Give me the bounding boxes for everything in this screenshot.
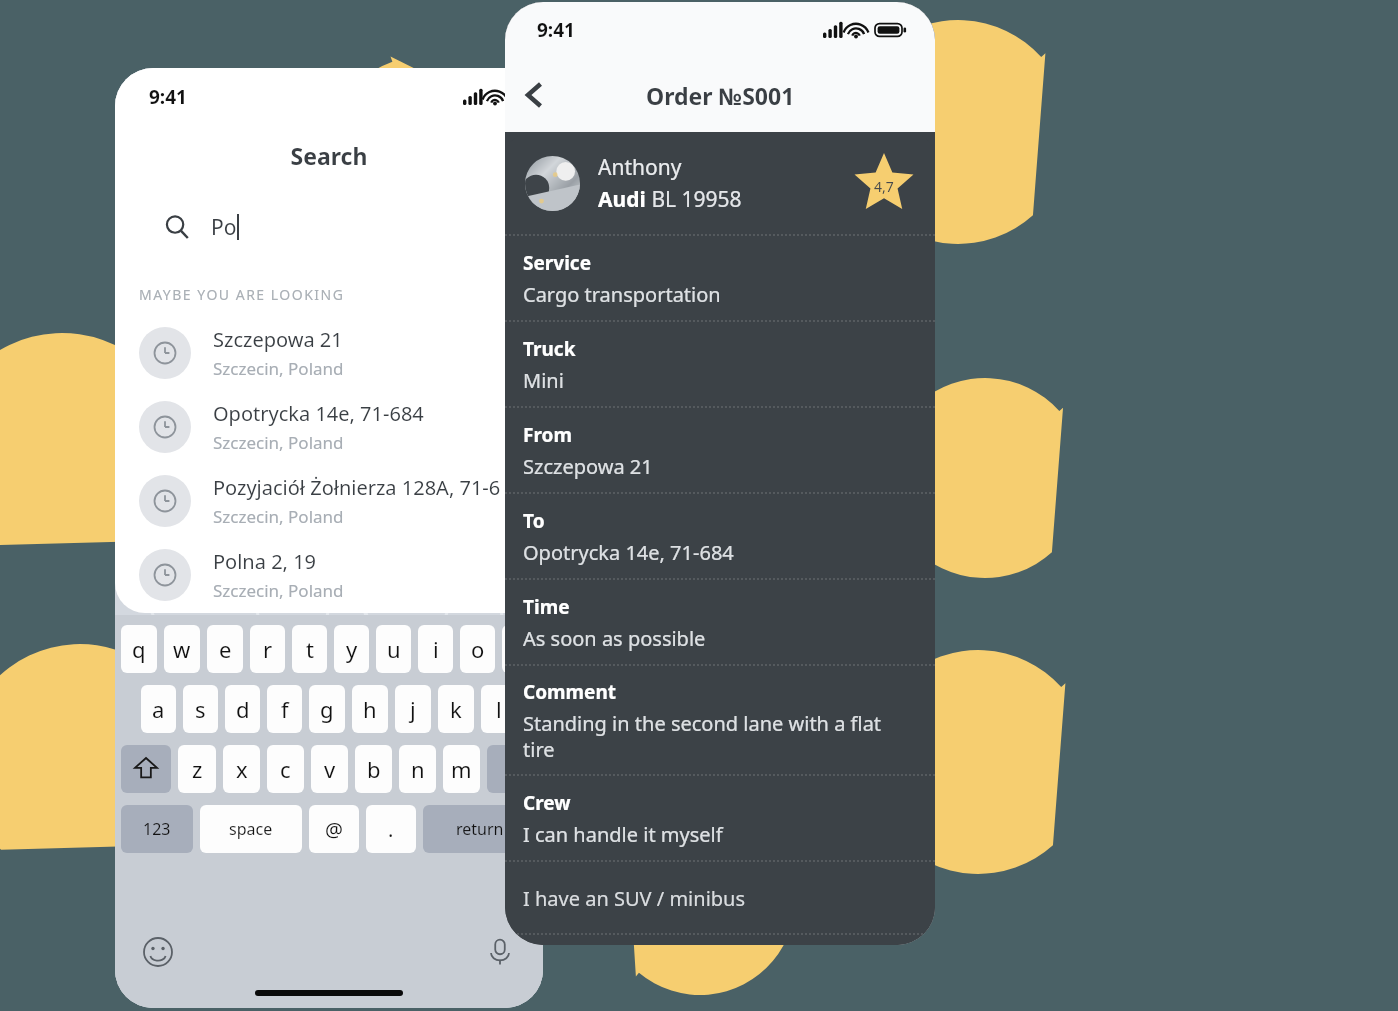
- button[interactable]: z: [178, 745, 216, 793]
- staticText: m: [451, 754, 472, 784]
- button[interactable]: q: [121, 625, 157, 673]
- staticText: As soon as possible: [523, 625, 706, 652]
- staticText: .: [388, 816, 394, 843]
- button[interactable]: o: [460, 625, 495, 673]
- staticText: To: [523, 508, 545, 534]
- button[interactable]: Truck: [505, 322, 935, 407]
- button[interactable]: l: [481, 685, 517, 733]
- button[interactable]: v: [311, 745, 348, 793]
- staticText: p: [513, 634, 527, 664]
- button[interactable]: u: [376, 625, 411, 673]
- staticText: h: [363, 694, 377, 724]
- staticText: k: [450, 694, 462, 724]
- button[interactable]: 123: [121, 805, 193, 853]
- staticText: a: [152, 694, 165, 724]
- button[interactable]: i: [418, 625, 453, 673]
- staticText: x: [236, 754, 248, 784]
- button[interactable]: return: [423, 805, 537, 853]
- button[interactable]: Back: [511, 71, 559, 119]
- button[interactable]: I have an SUV / minibus: [505, 862, 935, 934]
- button[interactable]: Shift: [121, 745, 171, 793]
- button[interactable]: Opotrycka 14e, 71-684: [115, 390, 543, 464]
- button[interactable]: @: [309, 805, 359, 853]
- button[interactable]: Time: [505, 580, 935, 665]
- button[interactable]: Microphone: [483, 935, 517, 969]
- button[interactable]: g: [309, 685, 345, 733]
- staticText: s: [195, 694, 206, 724]
- button[interactable]: From: [505, 408, 935, 493]
- button[interactable]: Szczepowa 21: [115, 316, 543, 390]
- button[interactable]: To: [505, 494, 935, 579]
- staticText: @: [325, 816, 343, 843]
- button[interactable]: Polna 2, 19: [115, 538, 543, 612]
- staticText: r: [263, 634, 273, 664]
- staticText: 9:41: [149, 84, 187, 110]
- staticText: Polna 2, 19: [213, 548, 317, 575]
- staticText: BL 19958: [646, 185, 742, 214]
- staticText: l: [496, 694, 502, 724]
- button[interactable]: a: [141, 685, 176, 733]
- button[interactable]: Po: [137, 197, 521, 257]
- staticText: I can handle it myself: [523, 821, 723, 848]
- button[interactable]: d: [225, 685, 260, 733]
- button[interactable]: Service: [505, 236, 935, 321]
- button[interactable]: j: [395, 685, 431, 733]
- button[interactable]: c: [267, 745, 304, 793]
- staticText: Order №S001: [646, 80, 795, 111]
- staticText: b: [367, 754, 381, 784]
- staticText: space: [229, 818, 273, 840]
- staticText: Standing in the second lane with a flat …: [523, 710, 911, 763]
- staticText: Opotrycka 14e, 71-684: [523, 539, 734, 566]
- staticText: d: [236, 694, 250, 724]
- staticText: q: [132, 634, 146, 664]
- staticText: I have an SUV / minibus: [523, 885, 746, 912]
- staticText: j: [410, 694, 416, 724]
- button[interactable]: Crew: [505, 776, 935, 861]
- staticText: return: [456, 818, 504, 840]
- button[interactable]: space: [200, 805, 302, 853]
- staticText: Truck: [523, 336, 576, 362]
- staticText: Pozyjaciół Żołnierza 128A, 71-6: [213, 474, 501, 501]
- button[interactable]: Anthony: [505, 132, 935, 235]
- button[interactable]: Backspace: [487, 745, 537, 793]
- button[interactable]: .: [366, 805, 416, 853]
- button[interactable]: r: [250, 625, 285, 673]
- staticText: Szczecin, Poland: [213, 505, 344, 528]
- staticText: Search: [115, 140, 543, 171]
- button[interactable]: p: [502, 625, 537, 673]
- button[interactable]: k: [438, 685, 474, 733]
- staticText: Opotrycka 14e, 71-684: [213, 400, 424, 427]
- button[interactable]: b: [355, 745, 392, 793]
- staticText: i: [433, 634, 439, 664]
- staticText: Szczecin, Poland: [213, 579, 344, 602]
- button[interactable]: f: [267, 685, 302, 733]
- staticText: z: [192, 754, 203, 784]
- button[interactable]: w: [164, 625, 200, 673]
- button[interactable]: t: [292, 625, 327, 673]
- button[interactable]: Comment: [505, 666, 935, 775]
- button[interactable]: x: [223, 745, 260, 793]
- button[interactable]: Emoji: [141, 935, 175, 969]
- button[interactable]: Pozyjaciół Żołnierza 128A, 71-6: [115, 464, 543, 538]
- button[interactable]: n: [399, 745, 436, 793]
- staticText: MAYBE YOU ARE LOOKING: [139, 285, 345, 304]
- staticText: o: [471, 634, 485, 664]
- staticText: From: [523, 422, 572, 448]
- button[interactable]: y: [334, 625, 369, 673]
- staticText: Szczepowa 21: [213, 326, 343, 353]
- button[interactable]: h: [352, 685, 388, 733]
- staticText: g: [320, 694, 334, 724]
- staticText: y: [346, 634, 358, 664]
- staticText: u: [387, 634, 401, 664]
- staticText: Szczecin, Poland: [213, 431, 344, 454]
- staticText: v: [324, 754, 336, 784]
- staticText: Cargo transportation: [523, 281, 721, 308]
- staticText: Service: [523, 250, 591, 276]
- staticText: n: [411, 754, 425, 784]
- staticText: Time: [523, 594, 570, 620]
- button[interactable]: m: [443, 745, 480, 793]
- button[interactable]: e: [207, 625, 243, 673]
- button[interactable]: s: [183, 685, 218, 733]
- staticText: t: [306, 634, 314, 664]
- staticText: Szczepowa 21: [523, 453, 653, 480]
